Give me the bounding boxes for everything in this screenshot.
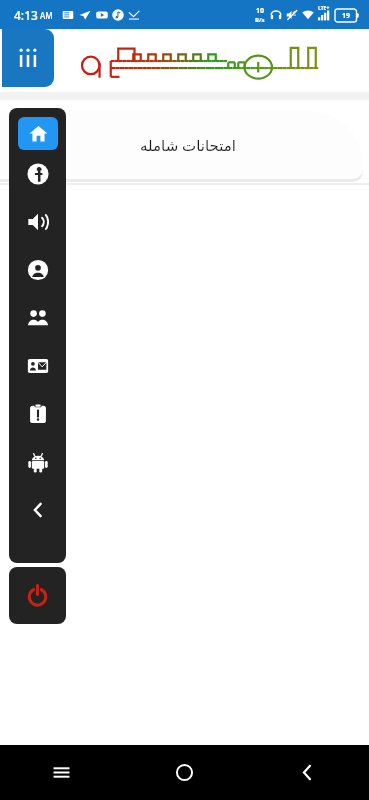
button[interactable]: Recent apps xyxy=(0,745,123,800)
button[interactable]: Facebook xyxy=(9,150,66,198)
button[interactable]: Account xyxy=(9,246,66,294)
button[interactable]: Back xyxy=(246,745,369,800)
staticText: 4:13 xyxy=(14,7,38,23)
button[interactable]: Home xyxy=(18,117,58,150)
staticText: 10 xyxy=(256,6,265,16)
button[interactable]: Android app xyxy=(9,438,66,486)
staticText: LTE+ xyxy=(318,5,330,12)
button[interactable]: Sound xyxy=(9,198,66,246)
button[interactable]: About xyxy=(9,390,66,438)
button[interactable]: Group xyxy=(9,294,66,342)
staticText: امتحانات شامله xyxy=(140,135,236,155)
button[interactable]: Back xyxy=(9,486,66,534)
button[interactable]: Contact xyxy=(9,342,66,390)
button[interactable]: امتحانات شامله xyxy=(0,111,363,179)
button[interactable]: App logo xyxy=(2,29,54,87)
staticText: AM xyxy=(40,10,53,21)
staticText: B/s xyxy=(255,16,265,24)
button[interactable]: Exit xyxy=(9,567,66,624)
staticText: 19 xyxy=(342,11,351,21)
button[interactable]: Home xyxy=(123,745,246,800)
